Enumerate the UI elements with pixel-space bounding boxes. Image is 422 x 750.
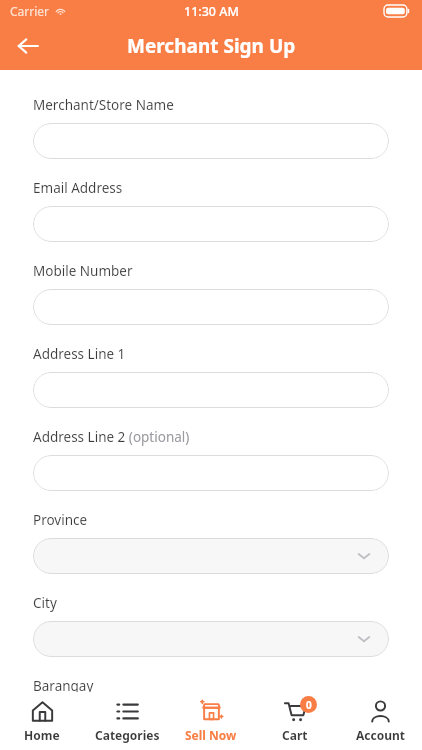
staticText: 0 (306, 698, 312, 712)
button[interactable] (33, 123, 389, 159)
staticText: Address Line 1 (33, 345, 126, 363)
staticText: Merchant/Store Name (33, 96, 174, 114)
button[interactable]: 0 (253, 700, 337, 743)
button[interactable]: Sell Now (169, 700, 253, 743)
staticText: Cart (282, 727, 308, 743)
staticText: Carrier (10, 3, 50, 19)
staticText: Email Address (33, 179, 123, 197)
button[interactable] (33, 289, 389, 325)
staticText: Categories (95, 727, 160, 743)
staticText: Province (33, 511, 88, 529)
staticText: Merchant Sign Up (127, 33, 296, 59)
button[interactable]: Categories (85, 700, 169, 743)
button[interactable] (33, 538, 389, 574)
button[interactable] (33, 704, 389, 740)
button[interactable]: Back (8, 26, 48, 66)
button[interactable] (33, 372, 389, 408)
button[interactable] (33, 206, 389, 242)
button[interactable]: Home (0, 700, 84, 743)
staticText: City (33, 594, 57, 612)
button[interactable] (33, 455, 389, 491)
button[interactable] (33, 621, 389, 657)
button[interactable]: Account (338, 700, 422, 743)
staticText: Account (356, 727, 405, 743)
staticText: 11:30 AM (184, 3, 239, 20)
staticText: Barangay (33, 677, 94, 695)
staticText: Home (24, 727, 60, 743)
staticText: Address Line 2 (optional) (33, 428, 190, 446)
staticText: Sell Now (185, 727, 237, 743)
staticText: Mobile Number (33, 262, 133, 280)
